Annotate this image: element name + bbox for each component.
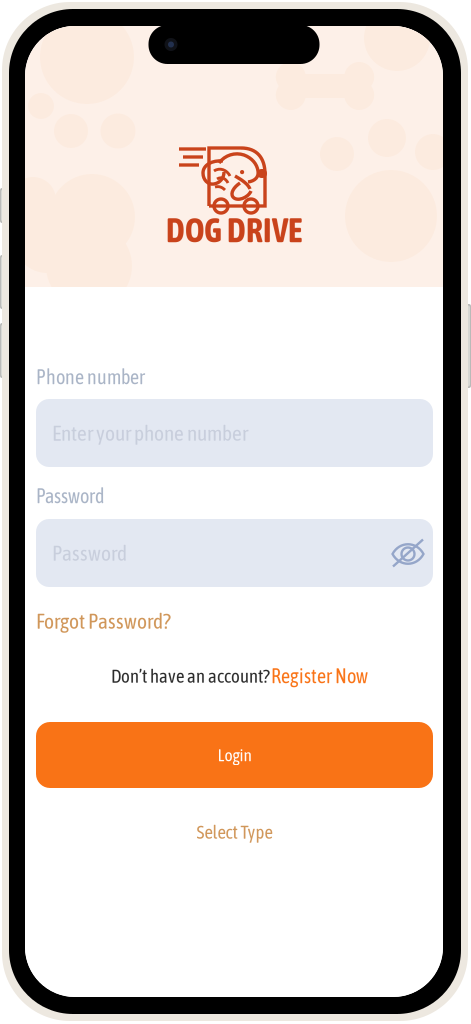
staticText: Login: [217, 745, 251, 765]
staticText: Phone number: [36, 365, 145, 388]
staticText: DOG DRIVE: [166, 211, 302, 249]
button[interactable]: Show password: [387, 533, 429, 573]
staticText: Password: [52, 541, 127, 565]
staticText: Enter your phone number: [52, 421, 248, 445]
staticText: Don’t have an account?: [111, 665, 270, 687]
staticText: Register Now: [271, 664, 368, 687]
button[interactable]: Login: [36, 722, 433, 788]
staticText: Forgot Password?: [36, 609, 171, 633]
button[interactable]: Register Now: [271, 664, 368, 687]
staticText: Password: [36, 484, 104, 507]
button[interactable]: Select Type: [36, 788, 433, 842]
staticText: Select Type: [196, 821, 272, 843]
button[interactable]: Forgot Password?: [36, 587, 171, 632]
